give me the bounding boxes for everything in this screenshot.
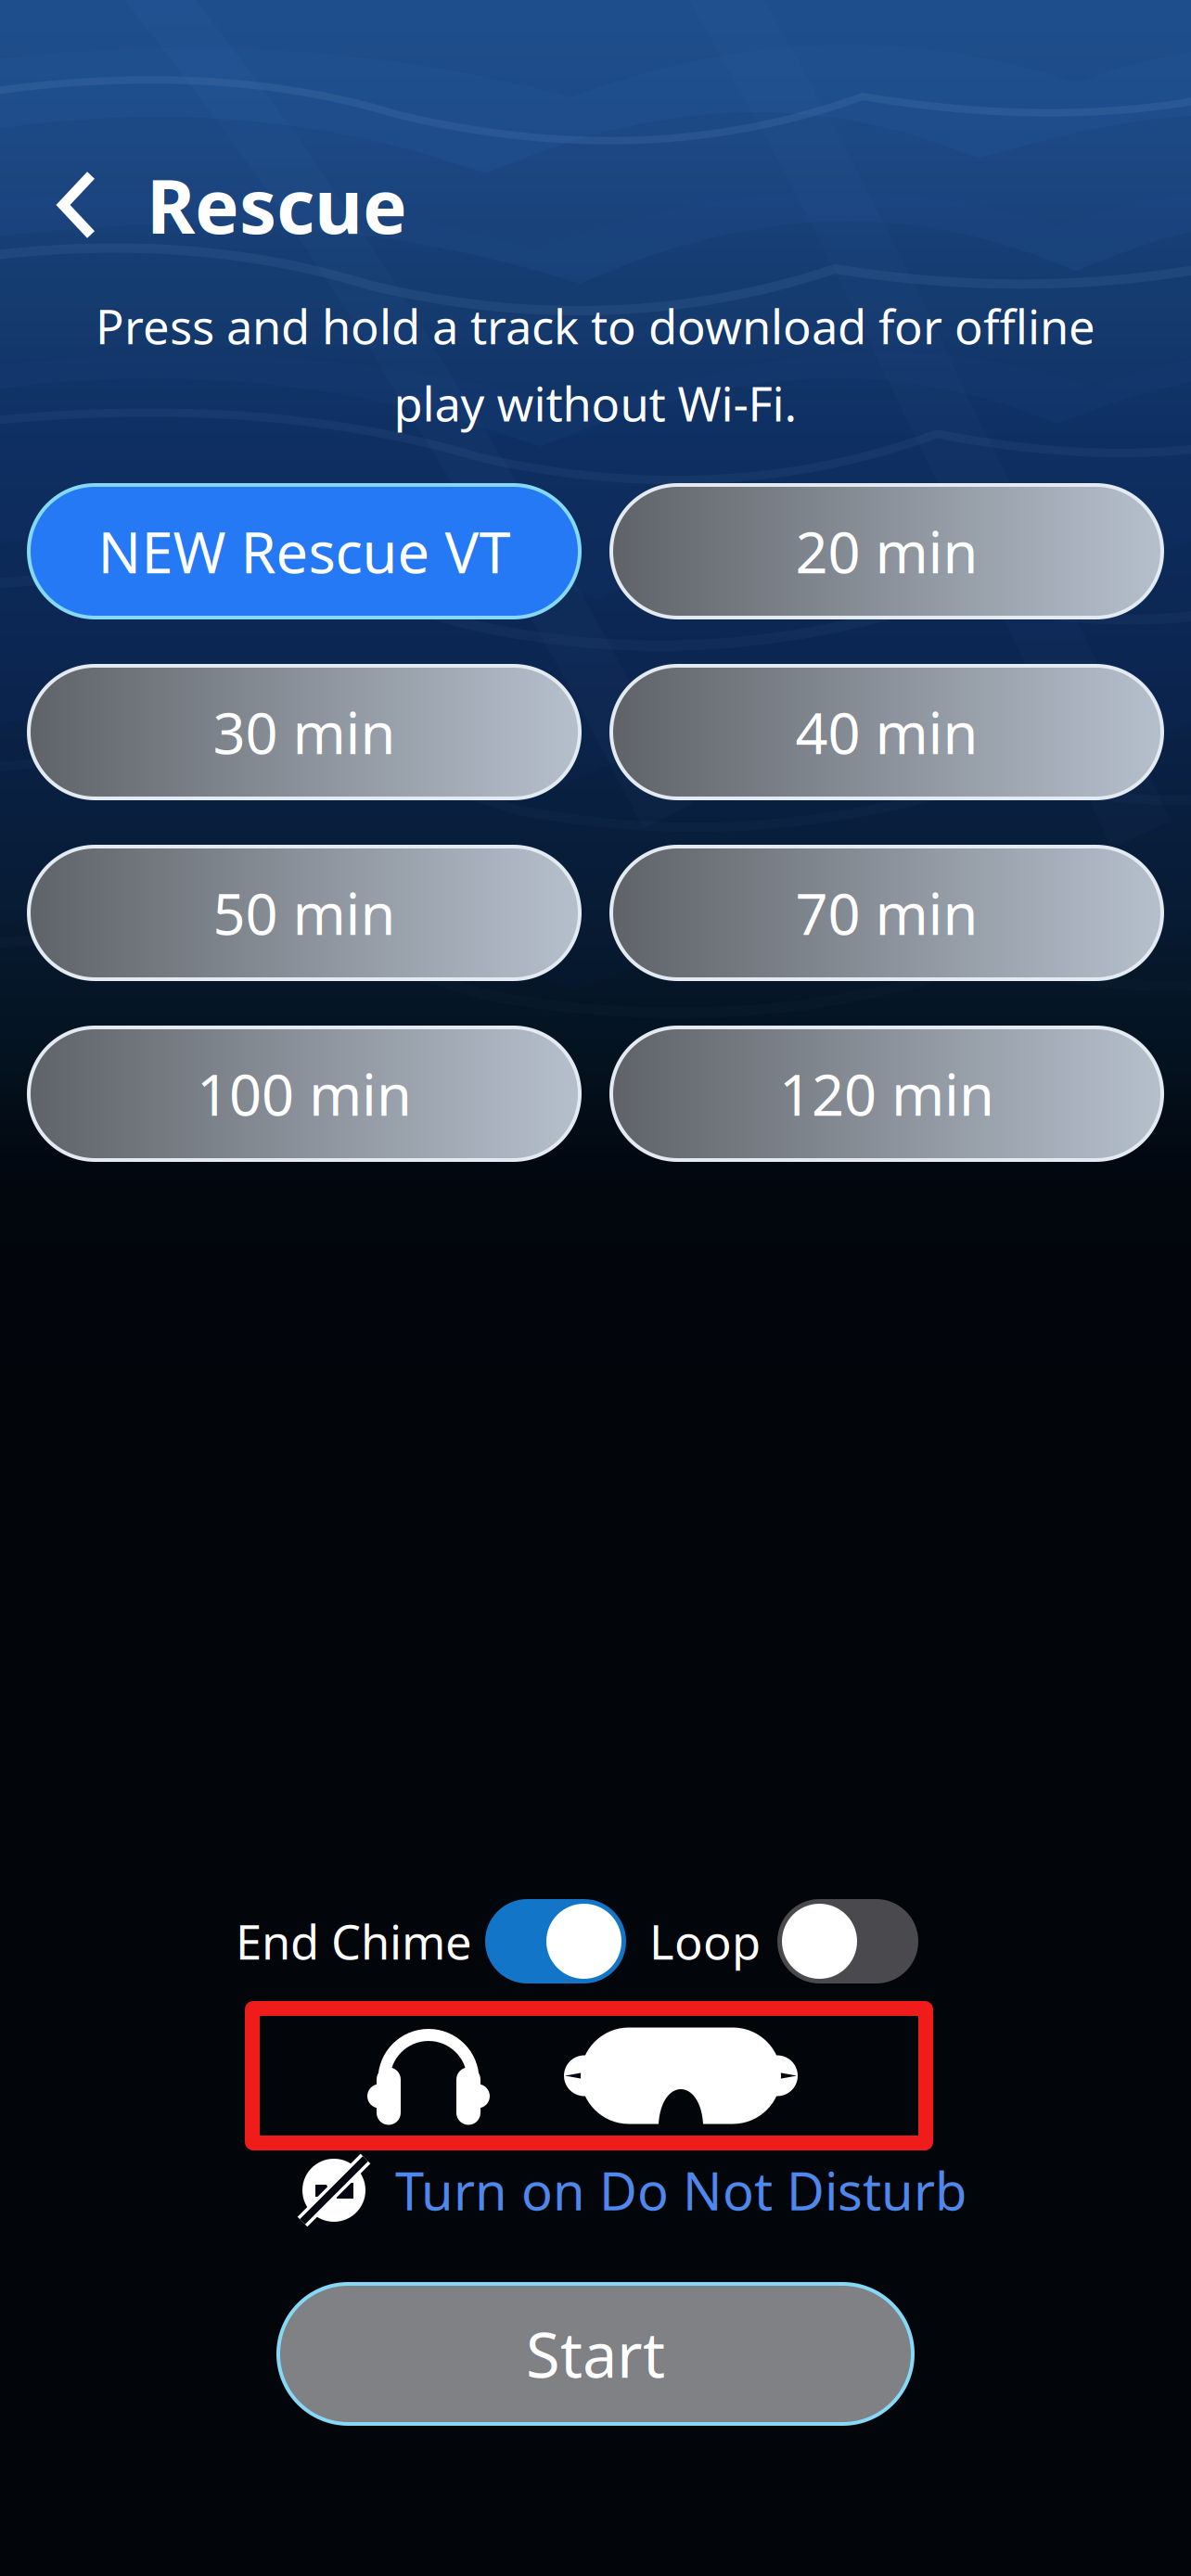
button[interactable]: 20 min <box>611 485 1162 618</box>
staticText: NEW Rescue VT <box>98 514 511 589</box>
button[interactable]: Loop <box>649 1899 918 1983</box>
button[interactable]: 120 min <box>611 1027 1162 1160</box>
button[interactable]: 100 min <box>29 1027 580 1160</box>
staticText: Turn on Do Not Disturb <box>395 2156 967 2225</box>
button[interactable]: 30 min <box>29 666 580 798</box>
staticText: Rescue <box>147 156 407 254</box>
button[interactable]: Headphones <box>372 2024 485 2128</box>
staticText: 30 min <box>213 694 396 770</box>
staticText: Start <box>526 2313 665 2395</box>
staticText: 20 min <box>795 514 978 589</box>
staticText: 120 min <box>779 1056 994 1131</box>
button[interactable]: 40 min <box>611 666 1162 798</box>
button[interactable]: End Chime <box>236 1899 626 1983</box>
staticText: 70 min <box>795 875 978 951</box>
button[interactable]: Back <box>28 154 130 256</box>
staticText: Press and hold a track to download for o… <box>96 295 1095 357</box>
staticText: 40 min <box>795 694 978 770</box>
button[interactable]: 50 min <box>29 847 580 979</box>
button[interactable]: NEW Rescue VT <box>29 485 580 618</box>
staticText: play without Wi-Fi. <box>394 372 797 435</box>
button[interactable]: Start <box>278 2284 913 2424</box>
staticText: 100 min <box>197 1056 412 1131</box>
button[interactable]: Sleep mask <box>564 2028 798 2124</box>
button[interactable]: 70 min <box>611 847 1162 979</box>
staticText: Loop <box>649 1910 761 1973</box>
staticText: 50 min <box>213 875 396 951</box>
staticText: End Chime <box>236 1910 472 1973</box>
button[interactable]: Turn on Do Not Disturb <box>295 2151 967 2229</box>
